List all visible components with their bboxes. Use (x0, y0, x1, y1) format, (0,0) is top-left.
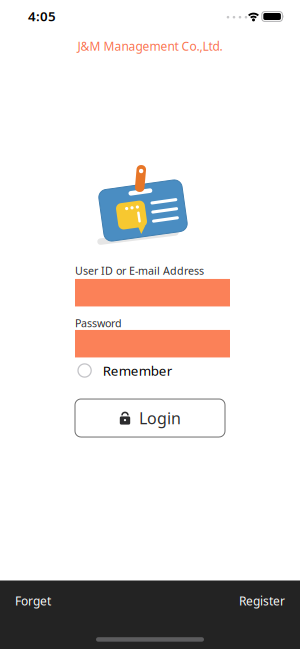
staticText: Register (239, 593, 285, 609)
staticText: Login (139, 407, 181, 429)
staticText: Forget (15, 593, 51, 609)
staticText: User ID or E-mail Address (75, 263, 204, 278)
button[interactable]: Forget (7, 587, 59, 615)
staticText: J&M Management Co.,Ltd. (77, 38, 222, 54)
staticText: 4:05 (28, 7, 56, 25)
staticText: Password (75, 316, 122, 330)
button[interactable]: Login (75, 399, 225, 437)
button[interactable]: Remember (78, 362, 300, 379)
button[interactable]: Register (231, 587, 293, 615)
staticText: Remember (103, 362, 173, 379)
